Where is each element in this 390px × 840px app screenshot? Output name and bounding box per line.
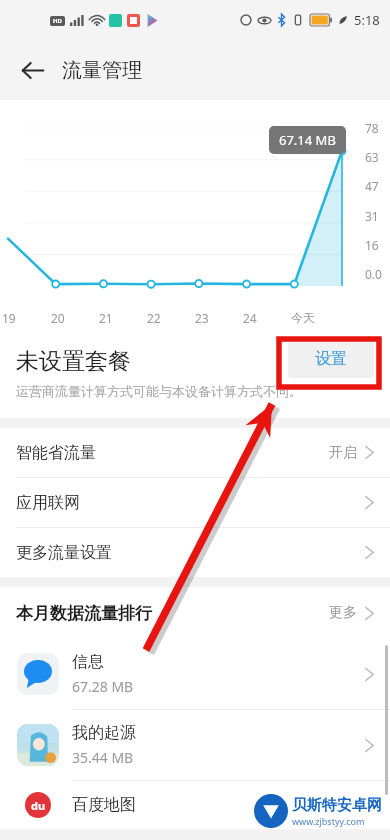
staticText: 22 xyxy=(147,310,161,326)
staticText: 20 xyxy=(51,310,65,326)
staticText: 19 xyxy=(2,310,16,326)
staticText: 贝斯特安卓网 xyxy=(292,796,382,815)
staticText: 我的起源 xyxy=(72,723,136,743)
button[interactable]: 智能省流量 xyxy=(0,428,390,477)
button[interactable]: 应用联网 xyxy=(0,478,390,527)
staticText: 未设置套餐 xyxy=(16,347,131,376)
button[interactable]: 我的起源 xyxy=(0,710,390,780)
staticText: 35.44 MB xyxy=(72,748,134,767)
staticText: 67.14 MB xyxy=(279,131,336,149)
button[interactable]: 本月数据流量排行 xyxy=(0,587,390,639)
staticText: 信息 xyxy=(72,652,104,672)
staticText: 31 xyxy=(365,208,379,224)
staticText: 78 xyxy=(365,120,379,136)
button[interactable]: Back xyxy=(8,46,56,94)
staticText: 21 xyxy=(99,310,113,326)
staticText: 47 xyxy=(365,178,379,194)
staticText: du xyxy=(31,798,46,813)
staticText: 开启 xyxy=(329,444,357,462)
staticText: 23 xyxy=(195,310,209,326)
staticText: 应用联网 xyxy=(16,493,80,513)
staticText: 63 xyxy=(365,149,379,165)
staticText: 0.0 xyxy=(365,266,382,282)
staticText: 5:18 xyxy=(354,11,380,29)
staticText: 本月数据流量排行 xyxy=(16,603,152,624)
staticText: 24 xyxy=(243,310,257,326)
staticText: 16 xyxy=(365,237,379,253)
button[interactable]: 信息 xyxy=(0,639,390,709)
staticText: www.zjbstyy.com xyxy=(292,815,365,827)
button[interactable]: du xyxy=(0,781,390,829)
staticText: 流量管理 xyxy=(62,58,142,83)
staticText: 今天 xyxy=(291,310,315,325)
staticText: 更多 xyxy=(329,604,357,622)
staticText: 百度地图 xyxy=(72,795,136,815)
staticText: 67.28 MB xyxy=(72,677,134,696)
staticText: 智能省流量 xyxy=(16,443,96,463)
button[interactable]: 更多流量设置 xyxy=(0,528,390,577)
staticText: 设置 xyxy=(315,349,347,369)
staticText: HD xyxy=(53,17,62,25)
button[interactable]: 设置 xyxy=(288,340,374,378)
staticText: 更多流量设置 xyxy=(16,543,112,563)
staticText: 运营商流量计算方式可能与本设备计算方式不同。 xyxy=(16,383,302,399)
